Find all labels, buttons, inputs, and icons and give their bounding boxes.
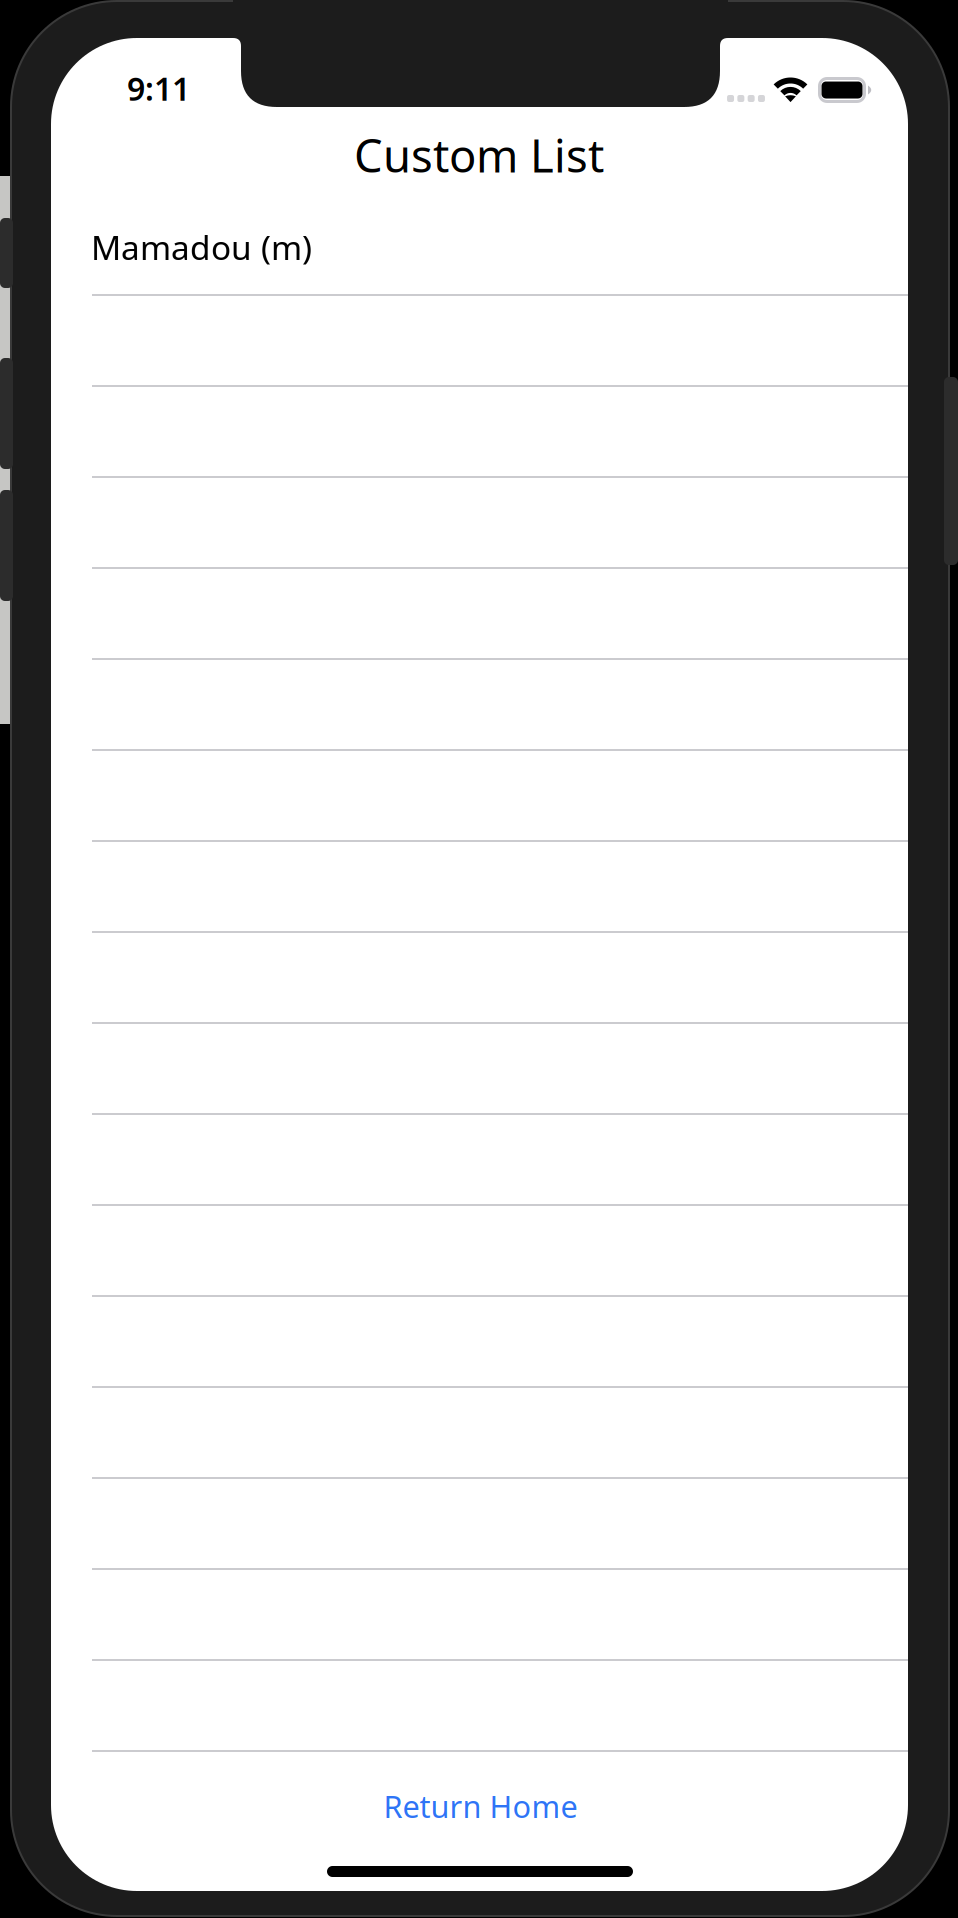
button[interactable]: Return Home: [52, 1773, 909, 1839]
staticText: Custom List: [354, 125, 604, 185]
staticText: Mamadou (m): [91, 225, 312, 269]
staticText: 9:11: [127, 67, 190, 109]
button[interactable]: Mamadou (m): [51, 205, 908, 296]
staticText: Return Home: [383, 1786, 577, 1826]
